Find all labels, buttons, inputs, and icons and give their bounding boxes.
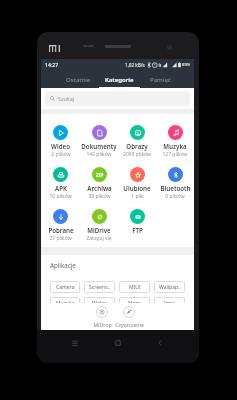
- staticText: Muzyka: [163, 142, 187, 150]
- staticText: Kategorie: [105, 75, 134, 83]
- staticText: Ulubione: [123, 184, 151, 192]
- staticText: 1,02 kB/s: [125, 62, 145, 68]
- staticText: MiDrop: [93, 321, 112, 328]
- staticText: Pamięć: [150, 75, 171, 83]
- staticText: Camera: [56, 284, 75, 291]
- button[interactable]: MIUI: [119, 281, 150, 293]
- button[interactable]: Ostatnie: [58, 70, 99, 88]
- staticText: 89%: [182, 62, 191, 68]
- staticText: 1 plik: [131, 193, 144, 200]
- staticText: MiDrive: [87, 226, 111, 234]
- button[interactable]: Muzyka: [156, 125, 194, 158]
- button[interactable]: Dokumenty: [80, 125, 118, 158]
- staticText: Zaloguj się: [86, 235, 112, 242]
- staticText: 127 plików: [162, 151, 188, 158]
- staticText: Wallpap..: [159, 284, 181, 291]
- staticText: 10 plików: [49, 193, 72, 200]
- button[interactable]: Back: [153, 336, 167, 350]
- button[interactable]: MiDrop: [81, 306, 123, 328]
- button[interactable]: ZIP: [80, 167, 118, 200]
- staticText: Muzyka: [56, 300, 75, 307]
- button[interactable]: Pamięć: [140, 70, 181, 88]
- button[interactable]: Inne: [154, 297, 185, 309]
- button[interactable]: Muzyka: [50, 297, 80, 309]
- staticText: Screens..: [89, 284, 111, 291]
- staticText: Wideo: [92, 300, 108, 307]
- button[interactable]: Camera: [50, 281, 80, 293]
- button[interactable]: Mapy: [119, 297, 150, 309]
- staticText: 0 plików: [165, 193, 185, 200]
- staticText: Archiwa: [87, 184, 112, 192]
- staticText: Czyszczenie: [115, 321, 144, 328]
- staticText: 14:27: [45, 61, 59, 68]
- staticText: ZIP: [96, 172, 104, 178]
- button[interactable]: MiDrive: [80, 209, 118, 242]
- staticText: FTP: [132, 226, 143, 234]
- staticText: 27 plików: [49, 235, 72, 242]
- staticText: Pobrane: [48, 226, 74, 234]
- staticText: Wideo: [51, 142, 70, 150]
- button[interactable]: APK: [41, 167, 80, 200]
- button[interactable]: Obrazy: [118, 125, 156, 158]
- staticText: Inne: [164, 300, 175, 307]
- button[interactable]: Bluetooth: [156, 167, 194, 200]
- staticText: MIUI: [129, 284, 141, 291]
- staticText: Aplikacje: [50, 261, 76, 269]
- staticText: Obrazy: [126, 142, 148, 150]
- staticText: 2093 plików: [123, 151, 151, 158]
- staticText: 38 plików: [88, 193, 111, 200]
- staticText: 2 plików: [51, 151, 71, 158]
- button[interactable]: Ulubione: [118, 167, 156, 200]
- staticText: 140 plików: [86, 151, 112, 158]
- staticText: APK: [55, 184, 67, 192]
- button[interactable]: Wideo: [41, 125, 80, 158]
- button[interactable]: FTP: [118, 209, 156, 234]
- staticText: Szukaj: [58, 95, 75, 102]
- staticText: Ostatnie: [66, 75, 91, 83]
- button[interactable]: Szukaj: [45, 91, 190, 106]
- button[interactable]: Wideo: [84, 297, 115, 309]
- button[interactable]: Czyszczenie: [108, 306, 150, 328]
- button[interactable]: Pobrane: [41, 209, 80, 242]
- staticText: Dokumenty: [81, 142, 117, 150]
- button[interactable]: Recent apps: [68, 336, 82, 350]
- button[interactable]: Wallpap..: [154, 281, 185, 293]
- button[interactable]: Kategorie: [99, 70, 140, 88]
- staticText: Mapy: [128, 300, 142, 307]
- button[interactable]: Screens..: [84, 281, 115, 293]
- button[interactable]: Home: [111, 336, 125, 350]
- staticText: Bluetooth: [160, 184, 191, 192]
